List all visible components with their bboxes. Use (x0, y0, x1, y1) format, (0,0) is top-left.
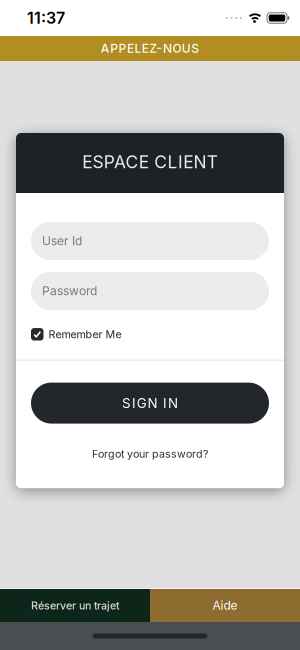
button[interactable]: Password (16, 272, 284, 310)
button[interactable]: User Id (16, 222, 284, 260)
staticText: ESPACE CLIENT (82, 152, 218, 172)
staticText: APPELEZ-NOUS (101, 41, 199, 56)
staticText: SIGN IN (122, 395, 178, 411)
button[interactable]: Forgot your password? (92, 448, 208, 460)
staticText: 11:37 (27, 9, 65, 27)
staticText: Remember Me (48, 328, 121, 341)
staticText: Aide (212, 598, 237, 613)
button[interactable]: Aide (150, 589, 300, 622)
button[interactable]: Réserver un trajet (0, 589, 150, 622)
staticText: Réserver un trajet (31, 599, 119, 612)
button[interactable]: SIGN IN (16, 383, 284, 424)
button[interactable]: Remember Me (16, 328, 284, 341)
staticText: Password (42, 284, 97, 298)
button[interactable]: APPELEZ-NOUS (0, 36, 300, 61)
staticText: User Id (42, 234, 82, 248)
staticText: Forgot your password? (92, 448, 208, 460)
